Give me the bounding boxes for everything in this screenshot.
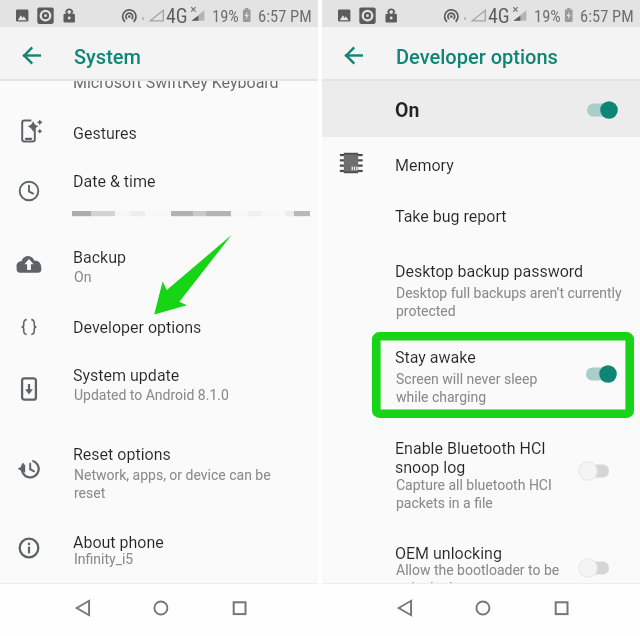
staticText: Gestures bbox=[73, 124, 137, 143]
staticText: 19% bbox=[534, 7, 561, 26]
button[interactable]: Recent apps bbox=[217, 585, 263, 631]
staticText: Updated to Android 8.1.0 bbox=[74, 387, 229, 403]
staticText: OEM unlocking bbox=[395, 544, 502, 563]
staticText: System update bbox=[73, 366, 180, 385]
staticText: Developer options bbox=[73, 318, 202, 337]
staticText: 6:57 PM bbox=[258, 7, 312, 26]
staticText: Reset options bbox=[73, 445, 171, 464]
button[interactable]: Backup bbox=[0, 235, 318, 295]
staticText: On bbox=[395, 99, 420, 122]
staticText: About phone bbox=[73, 533, 164, 552]
button[interactable]: Enable Bluetooth HCI snoop log bbox=[322, 426, 640, 509]
staticText: Backup bbox=[73, 248, 126, 267]
button[interactable]: Back bbox=[382, 585, 428, 631]
staticText: Screen will never sleep while charging bbox=[396, 371, 538, 405]
button[interactable]: Date & time bbox=[0, 159, 318, 205]
button[interactable]: Reset options bbox=[0, 432, 318, 493]
button[interactable]: Developer options bbox=[0, 305, 318, 351]
button[interactable]: Memory bbox=[322, 143, 640, 189]
button[interactable]: Navigate up bbox=[330, 31, 378, 79]
staticText: Date & time bbox=[73, 172, 156, 191]
button[interactable]: Gestures bbox=[0, 111, 318, 157]
staticText: Network, apps, or device can be reset bbox=[74, 467, 271, 501]
button[interactable]: On bbox=[322, 80, 640, 137]
staticText: Allow the bootloader to be unlocked bbox=[396, 562, 560, 596]
staticText: Desktop full backups aren’t currently pr… bbox=[396, 285, 622, 319]
staticText: 4G bbox=[166, 4, 188, 27]
staticText: Memory bbox=[395, 156, 454, 175]
staticText: Stay awake bbox=[395, 348, 476, 367]
button[interactable]: System update bbox=[0, 353, 318, 413]
button[interactable]: Take bug report bbox=[322, 194, 640, 240]
button[interactable]: Microsoft SwiftKey Keyboard bbox=[0, 60, 318, 106]
staticText: 6:57 PM bbox=[580, 7, 634, 26]
staticText: On bbox=[74, 269, 92, 285]
button[interactable]: Back bbox=[60, 585, 106, 631]
staticText: 19% bbox=[212, 7, 239, 26]
staticText: 4G bbox=[488, 4, 510, 27]
staticText: Take bug report bbox=[395, 207, 507, 226]
staticText: Microsoft SwiftKey Keyboard bbox=[73, 73, 279, 92]
button[interactable]: Home bbox=[138, 585, 184, 631]
button[interactable]: Navigate up bbox=[8, 31, 56, 79]
button[interactable]: Recent apps bbox=[539, 585, 585, 631]
staticText: Desktop backup password bbox=[395, 262, 584, 281]
button[interactable]: Desktop backup password bbox=[322, 249, 640, 317]
staticText: System bbox=[74, 45, 141, 68]
staticText: Developer options bbox=[396, 45, 558, 68]
button[interactable]: About phone bbox=[0, 520, 318, 577]
staticText: Enable Bluetooth HCI snoop log bbox=[395, 439, 546, 477]
button[interactable]: Home bbox=[460, 585, 506, 631]
button[interactable]: OEM unlocking bbox=[322, 531, 640, 594]
button[interactable]: Stay awake bbox=[322, 335, 640, 403]
staticText: Capture all bluetooth HCI packets in a f… bbox=[396, 477, 552, 511]
staticText: Infinity_i5 bbox=[74, 551, 134, 567]
